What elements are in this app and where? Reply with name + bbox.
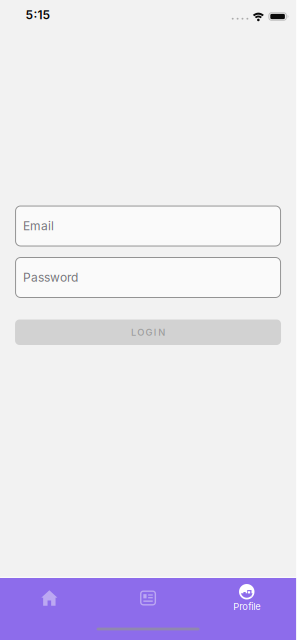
staticText: LOGIN [131,327,165,338]
button[interactable]: Password [15,257,281,298]
button[interactable]: LOGIN [15,319,281,345]
staticText: Password [23,270,78,285]
button[interactable]: Home [0,580,99,616]
button[interactable]: Profile [197,580,296,616]
button[interactable]: Feed [99,580,197,616]
staticText: Email [23,219,54,233]
staticText: Profile [233,601,260,612]
button[interactable]: Email [15,205,281,246]
staticText: 5:15 [26,8,51,22]
